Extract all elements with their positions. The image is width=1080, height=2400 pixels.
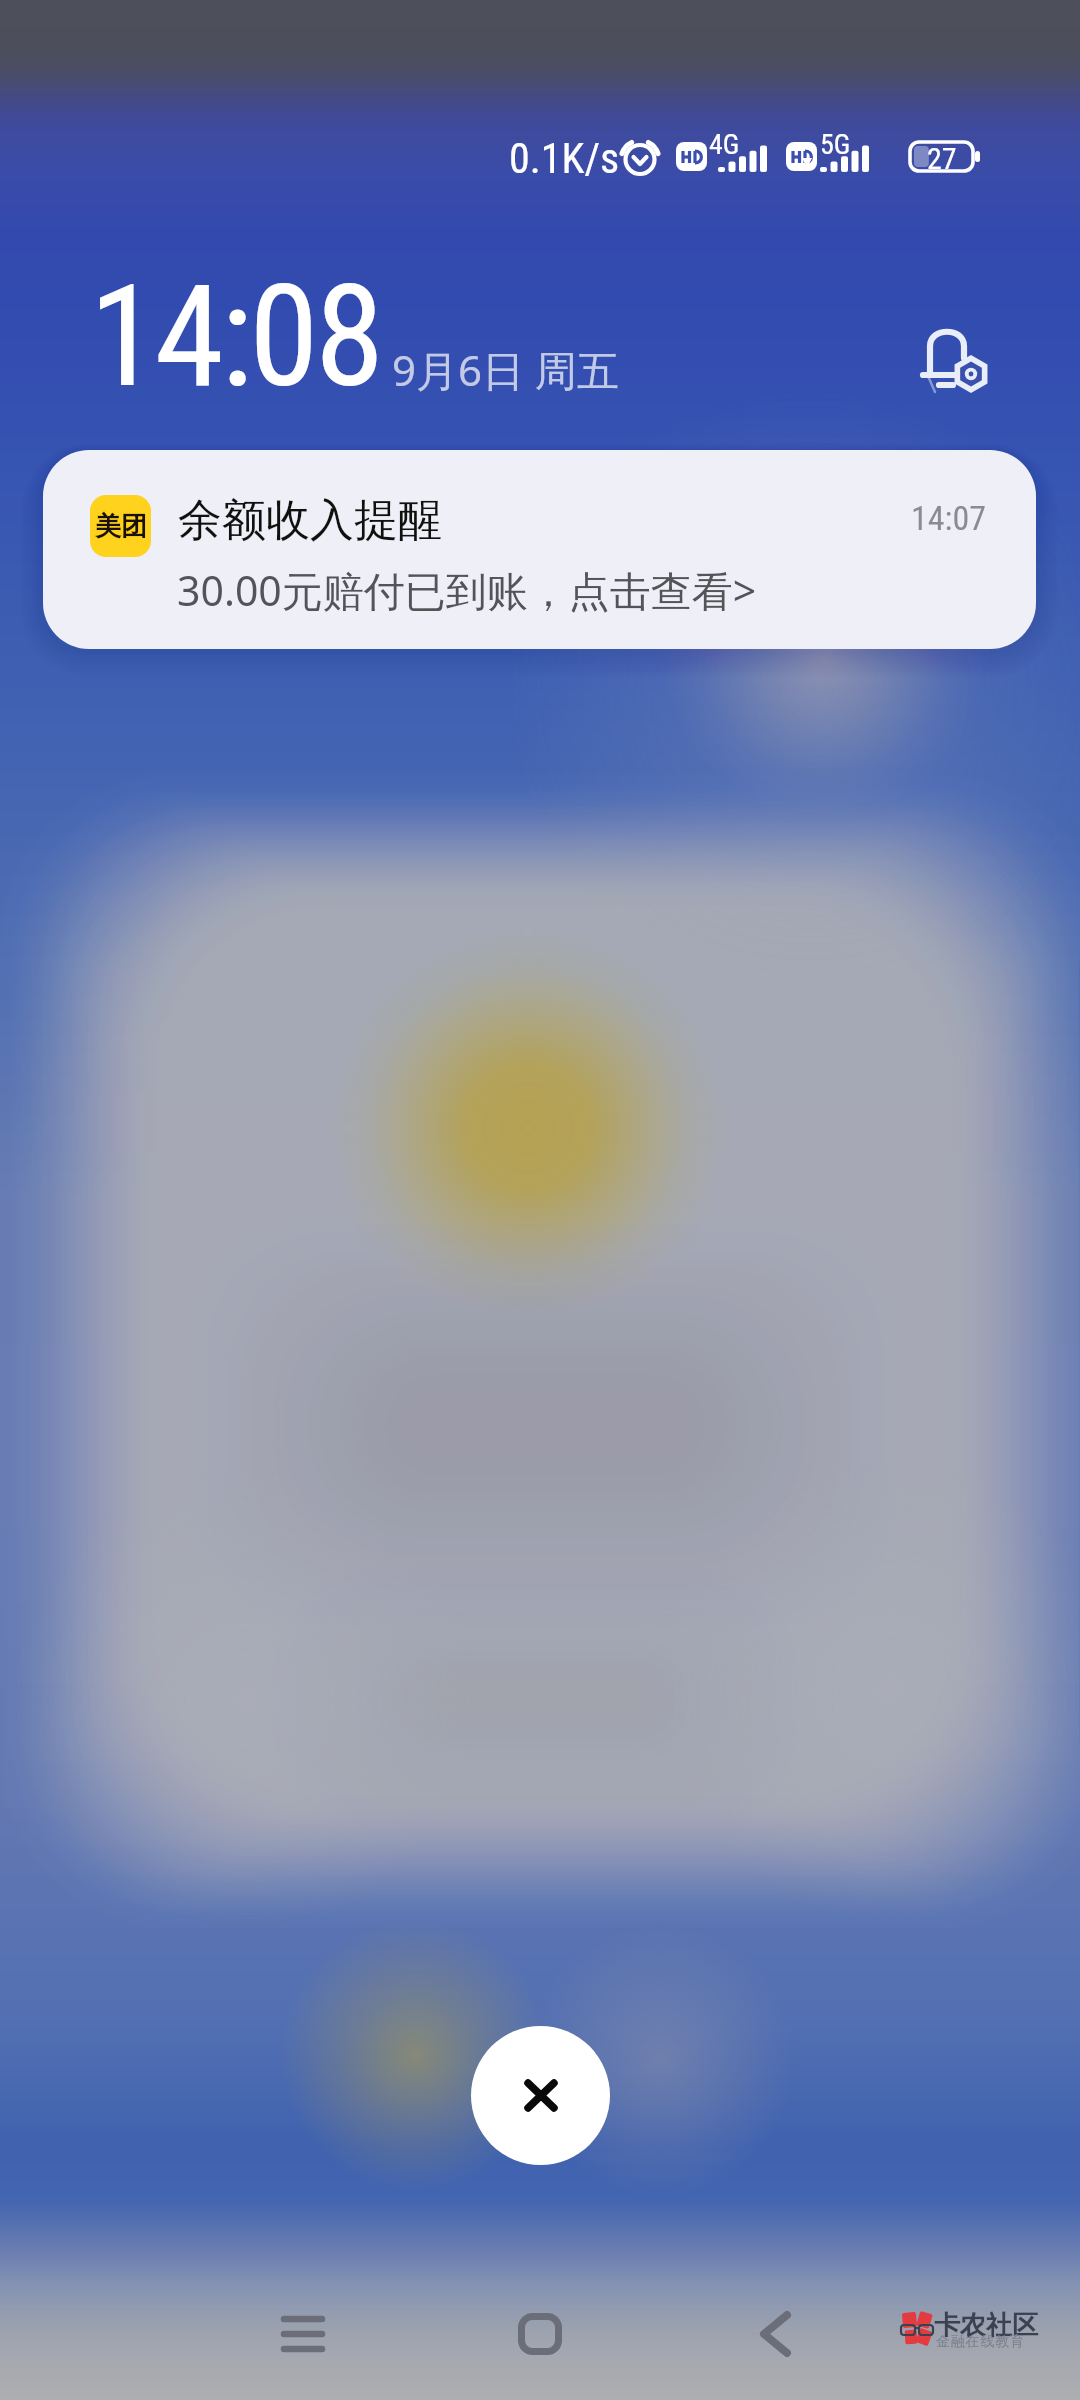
staticText: 9月6日 周五 xyxy=(392,341,619,398)
staticText: 余额收入提醒 xyxy=(178,493,442,548)
staticText: 卡农社区 xyxy=(934,2309,1038,2342)
staticText: 金融在线教育 xyxy=(936,2333,1025,2351)
button[interactable]: Notification settings xyxy=(898,312,998,412)
staticText: 14:07 xyxy=(911,498,987,538)
button[interactable]: Recent apps xyxy=(243,2294,363,2374)
staticText: 27 xyxy=(927,141,957,176)
staticText: 美团 xyxy=(95,510,147,543)
button[interactable]: 美团 xyxy=(43,450,1036,649)
staticText: 30.00元赔付已到账，点击查看> xyxy=(177,562,757,618)
staticText: 5G xyxy=(820,128,851,161)
button[interactable]: Close xyxy=(471,2026,610,2165)
button[interactable]: Back xyxy=(715,2294,835,2374)
staticText: 14:08 xyxy=(89,254,381,419)
staticText: 4G xyxy=(709,128,740,161)
staticText: 0.1K/s xyxy=(509,134,620,183)
button[interactable]: Home xyxy=(480,2294,600,2374)
